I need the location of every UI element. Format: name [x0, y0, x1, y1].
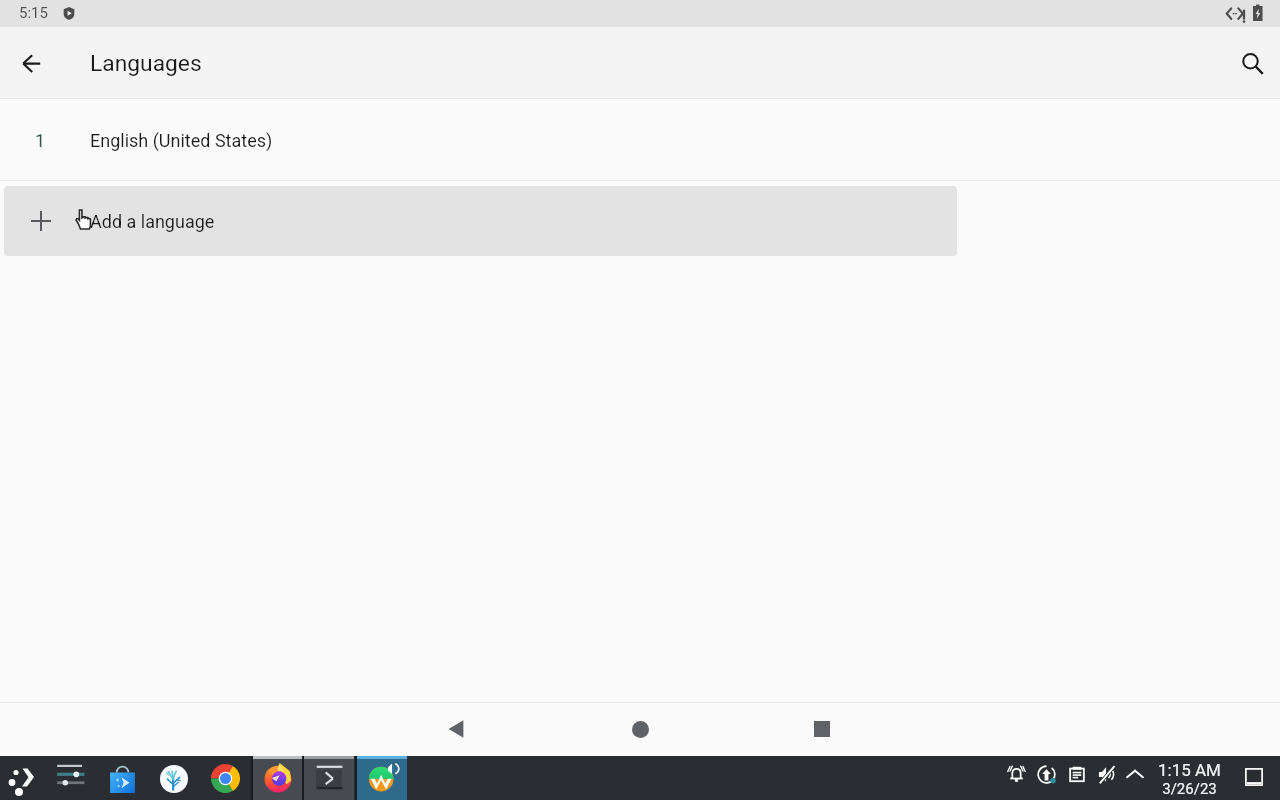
button[interactable]: Firefox window — [253, 756, 303, 800]
staticText: Languages — [90, 50, 202, 77]
button[interactable]: Show hidden icons — [1126, 766, 1144, 784]
button[interactable]: 1 — [0, 99, 1280, 180]
button[interactable]: Application launcher — [6, 761, 36, 791]
button[interactable]: Recent apps — [798, 705, 846, 753]
button[interactable]: Show desktop — [1245, 768, 1263, 786]
button[interactable]: Updates available — [1037, 765, 1056, 784]
staticText: 1:15 AM — [1158, 760, 1221, 780]
button[interactable]: Clipboard — [1068, 765, 1086, 783]
button[interactable]: Audio muted — [1096, 764, 1117, 785]
button[interactable]: Search — [1228, 39, 1276, 87]
staticText: 1 — [35, 130, 46, 151]
button[interactable]: Home — [616, 705, 664, 753]
staticText: 5:15 — [19, 4, 48, 22]
button[interactable]: Coral app — [160, 765, 188, 793]
staticText: Add a language — [90, 211, 215, 232]
staticText: 3/26/23 — [1162, 780, 1217, 798]
button[interactable]: Add a language — [4, 186, 957, 256]
button[interactable]: Google Chrome — [211, 764, 240, 793]
button[interactable]: Terminal window — [304, 756, 354, 800]
button[interactable]: Notifications — [1007, 765, 1026, 784]
button[interactable]: System settings — [56, 763, 85, 792]
staticText: English (United States) — [90, 130, 273, 151]
button[interactable]: Discover software — [109, 766, 136, 793]
button[interactable]: Navigate up — [8, 39, 56, 87]
button[interactable]: Android Emulator window — [357, 756, 407, 800]
button[interactable]: Back — [433, 705, 481, 753]
button[interactable]: 1:15 AM — [1155, 760, 1223, 798]
